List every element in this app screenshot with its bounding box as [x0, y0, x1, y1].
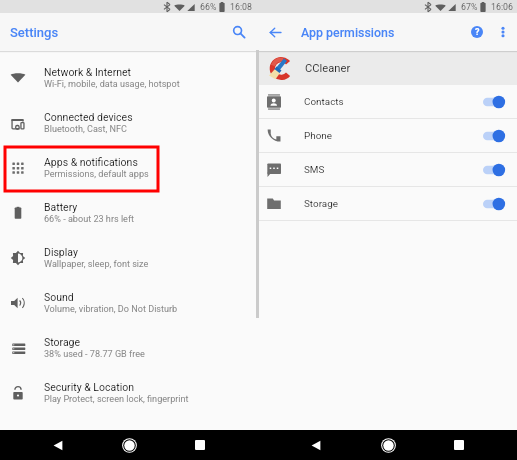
button[interactable]: Toggle permission	[483, 163, 505, 177]
button[interactable]: Search	[227, 20, 251, 44]
button[interactable]: More options	[492, 21, 514, 43]
staticText: 16:06	[491, 2, 513, 12]
button[interactable]: CCleaner	[256, 51, 517, 85]
staticText: 66% - about 23 hrs left	[44, 214, 135, 225]
staticText: SMS	[304, 164, 325, 176]
button[interactable]: Home	[116, 432, 142, 458]
staticText: Storage	[304, 198, 338, 210]
staticText: Bluetooth, Cast, NFC	[44, 124, 128, 135]
staticText: Volume, vibration, Do Not Disturb	[44, 304, 178, 315]
staticText: Phone	[304, 130, 333, 142]
button[interactable]: Apps & notifications	[0, 145, 256, 190]
button[interactable]: Network & Internet	[0, 55, 256, 100]
staticText: Storage	[44, 336, 81, 348]
staticText: Security & Location	[44, 381, 134, 393]
button[interactable]: Storage	[0, 325, 256, 370]
button[interactable]: Toggle permission	[483, 129, 505, 143]
button[interactable]: Battery	[0, 190, 256, 235]
staticText: Network & Internet	[44, 66, 132, 78]
staticText: Permissions, default apps	[44, 169, 149, 180]
staticText: 66%	[200, 2, 217, 12]
staticText: Connected devices	[44, 111, 133, 123]
button[interactable]: Contacts	[256, 85, 517, 118]
button[interactable]: Back	[265, 22, 285, 42]
staticText: 67%	[461, 2, 478, 12]
staticText: 38% used - 78.77 GB free	[44, 349, 145, 360]
staticText: Play Protect, screen lock, fingerprint	[44, 394, 189, 405]
staticText: Settings	[10, 25, 59, 40]
button[interactable]: Sound	[0, 280, 256, 325]
button[interactable]: Home	[375, 432, 401, 458]
button[interactable]: Phone	[256, 119, 517, 152]
button[interactable]: Back	[45, 432, 71, 458]
staticText: CCleaner	[305, 62, 351, 75]
staticText: Display	[44, 246, 78, 258]
button[interactable]: Connected devices	[0, 100, 256, 145]
staticText: Wallpaper, sleep, font size	[44, 259, 149, 270]
button[interactable]: Toggle permission	[483, 95, 505, 109]
staticText: Sound	[44, 291, 74, 303]
staticText: Battery	[44, 201, 78, 213]
button[interactable]: Recents	[446, 432, 472, 458]
button[interactable]: Help	[466, 21, 488, 43]
staticText: App permissions	[301, 25, 395, 40]
staticText: Contacts	[304, 96, 344, 108]
button[interactable]: Security & Location	[0, 370, 256, 415]
button[interactable]: Display	[0, 235, 256, 280]
staticText: ?	[475, 27, 480, 38]
staticText: 16:08	[230, 2, 252, 12]
staticText: Wi-Fi, mobile, data usage, hotspot	[44, 79, 180, 90]
button[interactable]: Back	[303, 432, 329, 458]
button[interactable]: Toggle permission	[483, 197, 505, 211]
button[interactable]: Recents	[187, 432, 213, 458]
button[interactable]: SMS	[256, 153, 517, 186]
button[interactable]: Storage	[256, 187, 517, 220]
staticText: Apps & notifications	[44, 156, 138, 168]
